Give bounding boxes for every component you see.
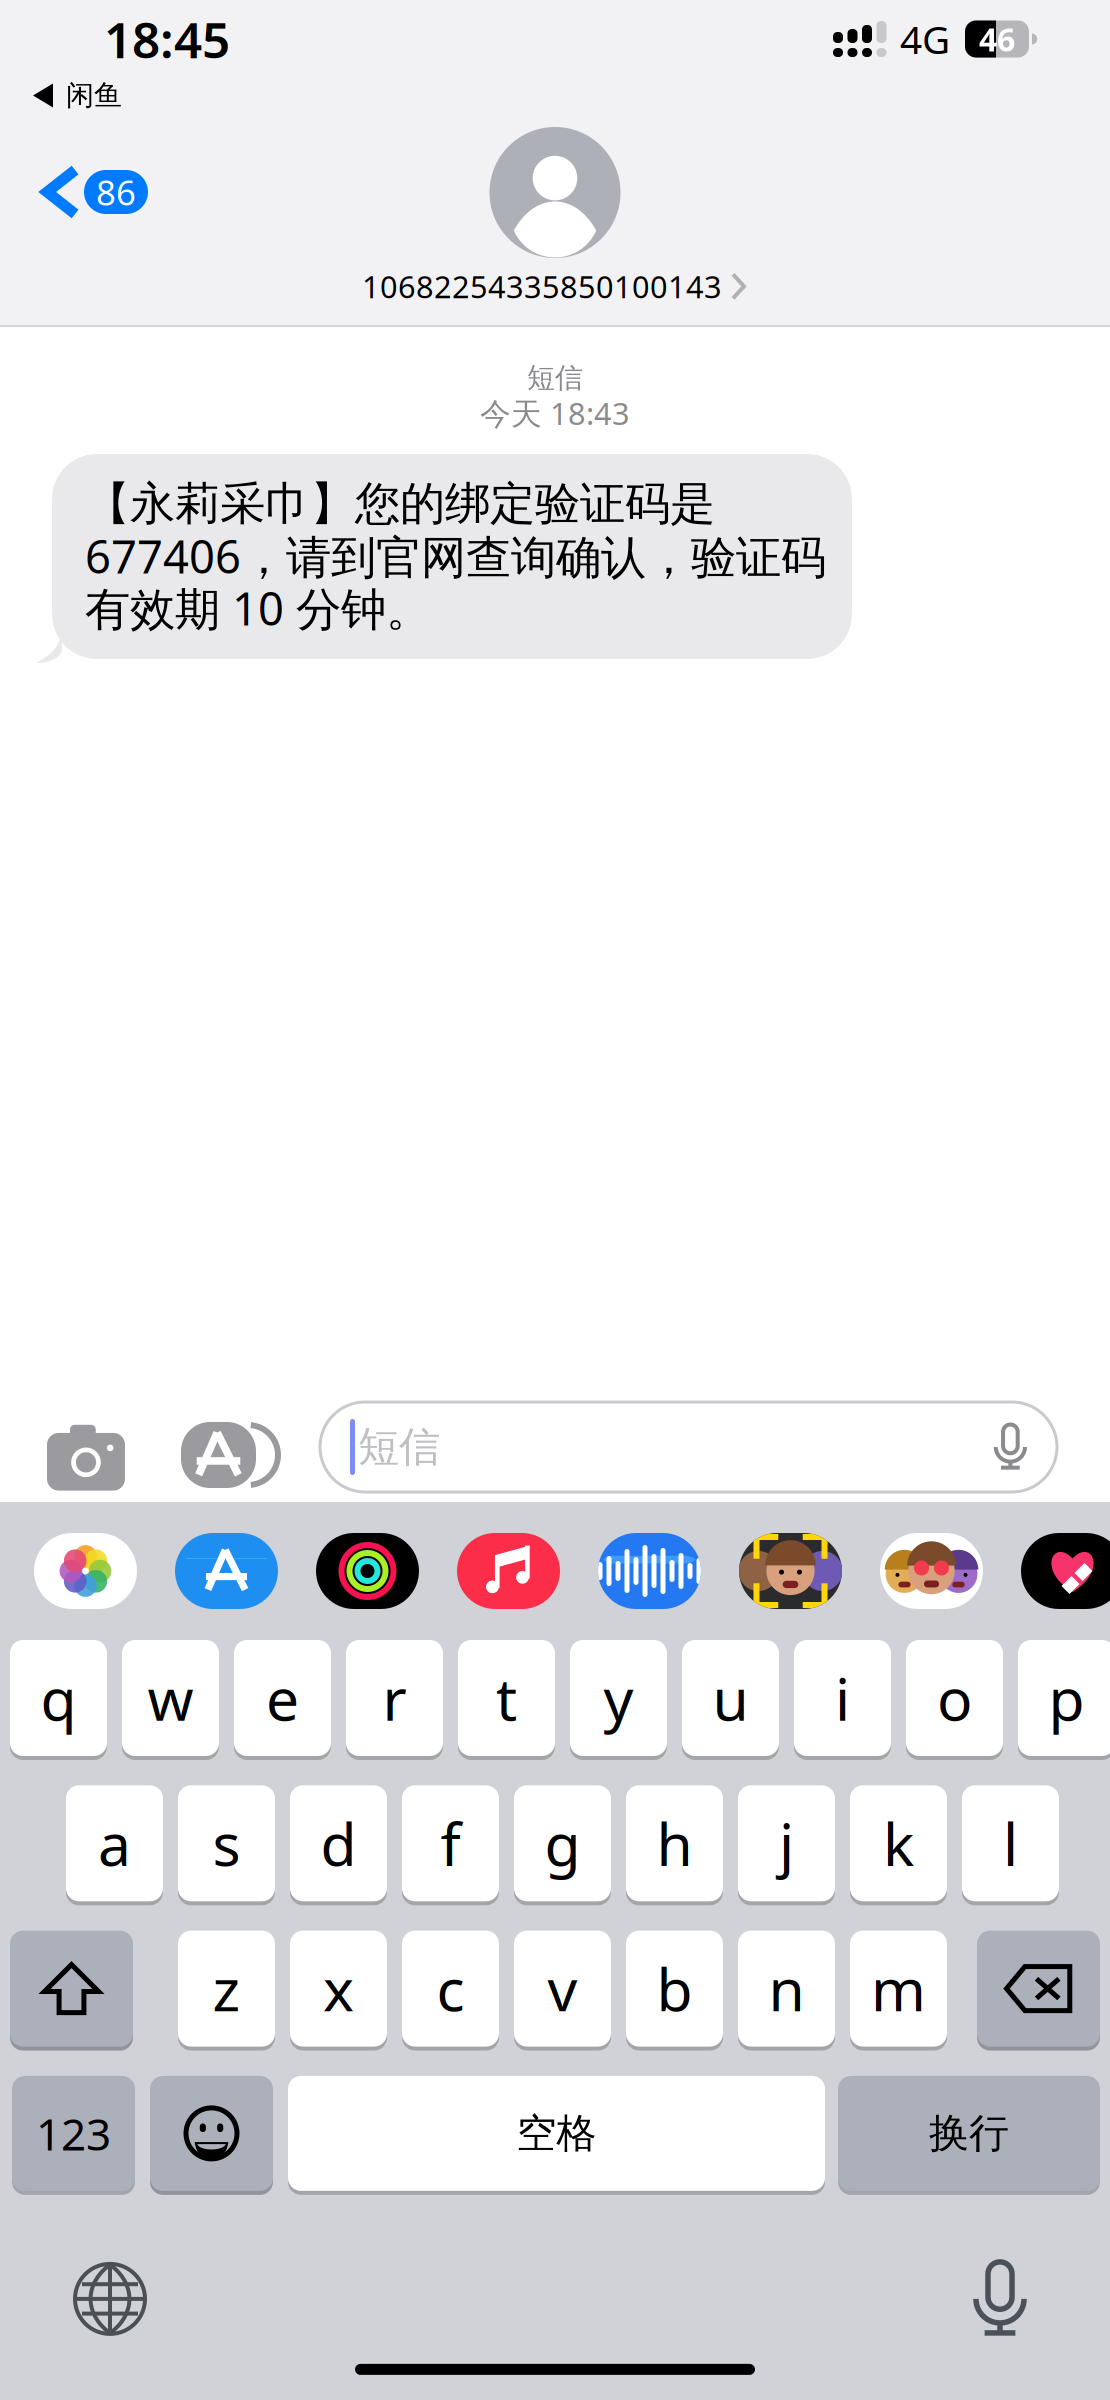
button[interactable]: x	[290, 1931, 387, 2047]
staticText: l	[1003, 1804, 1018, 1882]
staticText: a	[98, 1804, 131, 1882]
button[interactable]: k	[850, 1785, 947, 1901]
button[interactable]: v	[514, 1931, 611, 2047]
staticText: 18:45	[104, 6, 230, 72]
button[interactable]: 123	[12, 2076, 135, 2191]
button[interactable]: m	[850, 1931, 947, 2047]
staticText: 短信	[527, 361, 583, 395]
staticText: v	[547, 1950, 577, 2027]
staticText: s	[212, 1804, 240, 1882]
staticText: i	[835, 1659, 850, 1737]
staticText: 短信	[358, 1422, 440, 1472]
staticText: e	[266, 1659, 299, 1737]
button[interactable]: d	[290, 1785, 387, 1901]
button[interactable]: i	[794, 1640, 891, 1756]
staticText: 10682254335850100143	[362, 266, 722, 307]
button[interactable]: e	[234, 1640, 331, 1756]
staticText: 【永莉采巾】您的绑定验证码是	[85, 476, 715, 532]
staticText: p	[1048, 1659, 1084, 1737]
button[interactable]: Camera	[37, 1416, 135, 1496]
staticText: h	[656, 1804, 692, 1882]
staticText: b	[656, 1950, 692, 2027]
staticText: u	[712, 1659, 748, 1737]
button[interactable]: 换行	[838, 2076, 1100, 2191]
button[interactable]: b	[626, 1931, 723, 2047]
button[interactable]: p	[1018, 1640, 1110, 1756]
staticText: 今天 18:43	[480, 393, 630, 433]
staticText: 空格	[516, 2109, 596, 2158]
button[interactable]: Shift	[10, 1931, 133, 2047]
staticText: t	[496, 1659, 517, 1737]
button[interactable]: j	[738, 1785, 835, 1901]
staticText: c	[436, 1950, 464, 2027]
staticText: 4G	[900, 13, 950, 65]
staticText: q	[40, 1659, 76, 1737]
staticText: 123	[36, 2104, 111, 2163]
button[interactable]: r	[346, 1640, 443, 1756]
staticText: o	[937, 1659, 972, 1737]
staticText: j	[779, 1804, 794, 1882]
button[interactable]: l	[962, 1785, 1059, 1901]
button[interactable]: Emoji	[150, 2076, 273, 2191]
staticText: w	[147, 1659, 193, 1737]
button[interactable]: o	[906, 1640, 1003, 1756]
button[interactable]: u	[682, 1640, 779, 1756]
staticText: z	[212, 1950, 240, 2027]
button[interactable]: Dictate	[945, 2254, 1055, 2344]
staticText: 闲鱼	[66, 78, 122, 113]
staticText: d	[320, 1804, 356, 1882]
staticText: g	[544, 1804, 580, 1882]
staticText: r	[382, 1659, 406, 1737]
staticText: 有效期 10 分钟。	[85, 578, 431, 638]
button[interactable]: Next keyboard	[55, 2254, 165, 2344]
button[interactable]: h	[626, 1785, 723, 1901]
button[interactable]: y	[570, 1640, 667, 1756]
button[interactable]: q	[10, 1640, 107, 1756]
staticText: 换行	[929, 2109, 1009, 2158]
staticText: y	[603, 1659, 633, 1737]
button[interactable]: w	[122, 1640, 219, 1756]
button[interactable]: z	[178, 1931, 275, 2047]
button[interactable]: g	[514, 1785, 611, 1901]
button[interactable]: 86	[0, 113, 148, 220]
staticText: 677406，请到官网查询确认，验证码	[85, 526, 826, 586]
button[interactable]: 空格	[288, 2076, 825, 2191]
button[interactable]: t	[458, 1640, 555, 1756]
staticText: n	[768, 1950, 804, 2027]
button[interactable]: f	[402, 1785, 499, 1901]
staticText: 86	[96, 169, 136, 215]
button[interactable]: c	[402, 1931, 499, 2047]
button[interactable]: Apps	[181, 1415, 281, 1495]
staticText: f	[440, 1804, 460, 1882]
staticText: x	[323, 1950, 354, 2027]
button[interactable]: s	[178, 1785, 275, 1901]
staticText: 46	[979, 18, 1015, 60]
staticText: m	[871, 1950, 926, 2027]
staticText: k	[883, 1804, 914, 1882]
button[interactable]: a	[66, 1785, 163, 1901]
button[interactable]: Delete	[977, 1931, 1100, 2047]
button[interactable]: 短信	[320, 1402, 1057, 1492]
button[interactable]: n	[738, 1931, 835, 2047]
